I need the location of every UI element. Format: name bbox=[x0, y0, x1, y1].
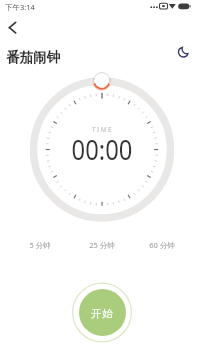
button[interactable]: 开始 bbox=[79, 289, 126, 336]
staticText: 60 分钟 bbox=[149, 240, 175, 250]
staticText: 开始 bbox=[91, 307, 114, 320]
button[interactable]: 5 分钟 bbox=[20, 240, 60, 250]
staticText: TIME bbox=[92, 125, 113, 134]
button[interactable]: 60 分钟 bbox=[140, 240, 184, 250]
staticText: 00:00 bbox=[71, 130, 133, 168]
staticText: 25 分钟 bbox=[89, 240, 115, 250]
staticText: 5 分钟 bbox=[29, 240, 51, 250]
staticText: 下午3:14 bbox=[5, 2, 35, 12]
button[interactable]: 25 分钟 bbox=[80, 240, 124, 250]
button[interactable] bbox=[175, 44, 192, 61]
button[interactable] bbox=[4, 18, 21, 35]
staticText: 番茄闹钟 bbox=[6, 49, 60, 66]
